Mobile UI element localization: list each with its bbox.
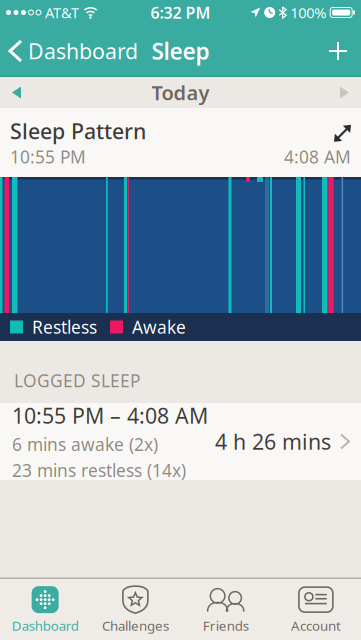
staticText: 4 h 26 mins: [215, 427, 331, 456]
button[interactable]: Dashboard: [0, 586, 90, 634]
staticText: Friends: [203, 617, 249, 634]
button[interactable]: Challenges: [90, 586, 180, 634]
staticText: 23 mins restless (14x): [12, 459, 186, 482]
staticText: Dashboard: [12, 617, 79, 634]
staticText: 100%: [290, 3, 326, 22]
staticText: Account: [291, 617, 341, 634]
staticText: 10:55 PM – 4:08 AM: [12, 401, 208, 430]
button[interactable]: Previous day: [0, 86, 21, 98]
button[interactable]: Expand chart: [334, 108, 351, 142]
staticText: 4:08 AM: [284, 145, 351, 168]
staticText: Sleep Pattern: [10, 117, 146, 145]
staticText: 10:55 PM: [10, 145, 86, 168]
staticText: LOGGED SLEEP: [14, 369, 140, 392]
staticText: 6:32 PM: [150, 2, 210, 23]
staticText: AT&T: [45, 3, 79, 22]
staticText: Challenges: [102, 617, 169, 634]
button[interactable]: Next day: [340, 86, 361, 98]
staticText: Sleep: [151, 36, 209, 66]
staticText: Restless: [32, 315, 97, 338]
button[interactable]: Friends: [180, 586, 271, 634]
staticText: Today: [151, 79, 209, 106]
staticText: 6 mins awake (2x): [12, 433, 158, 456]
button[interactable]: Account: [271, 586, 361, 634]
button[interactable]: 10:55 PM – 4:08 AM: [0, 403, 361, 480]
staticText: Dashboard: [28, 37, 138, 65]
button[interactable]: Dashboard: [0, 37, 138, 65]
button[interactable]: Add sleep log: [329, 42, 361, 60]
staticText: Awake: [132, 315, 186, 338]
